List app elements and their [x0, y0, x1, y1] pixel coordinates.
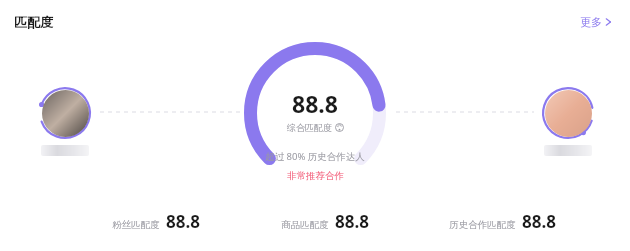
staticText: 商品匹配度: [281, 219, 329, 231]
staticText: 88.8: [166, 210, 200, 233]
button[interactable]: 历史合作匹配度: [447, 205, 558, 234]
button[interactable]: Creator profile left: [38, 86, 92, 156]
staticText: 超过 80% 历史合作达人: [265, 150, 365, 163]
staticText: 匹配度: [14, 14, 53, 30]
staticText: 88.8: [522, 210, 556, 233]
button[interactable]: 粉丝匹配度: [110, 205, 202, 234]
staticText: 综合匹配度: [287, 122, 332, 133]
staticText: 更多: [580, 15, 602, 29]
button[interactable]: Creator profile right: [541, 86, 595, 156]
staticText: 粉丝匹配度: [112, 219, 160, 231]
button[interactable]: 更多: [578, 13, 614, 31]
staticText: 非常推荐合作: [287, 170, 344, 182]
button[interactable]: Help about composite match score: [335, 123, 344, 132]
button[interactable]: 匹配度: [12, 12, 55, 32]
button[interactable]: 商品匹配度: [279, 205, 371, 234]
staticText: 88.8: [335, 210, 369, 233]
staticText: 88.8: [292, 88, 338, 119]
staticText: 历史合作匹配度: [449, 219, 516, 231]
